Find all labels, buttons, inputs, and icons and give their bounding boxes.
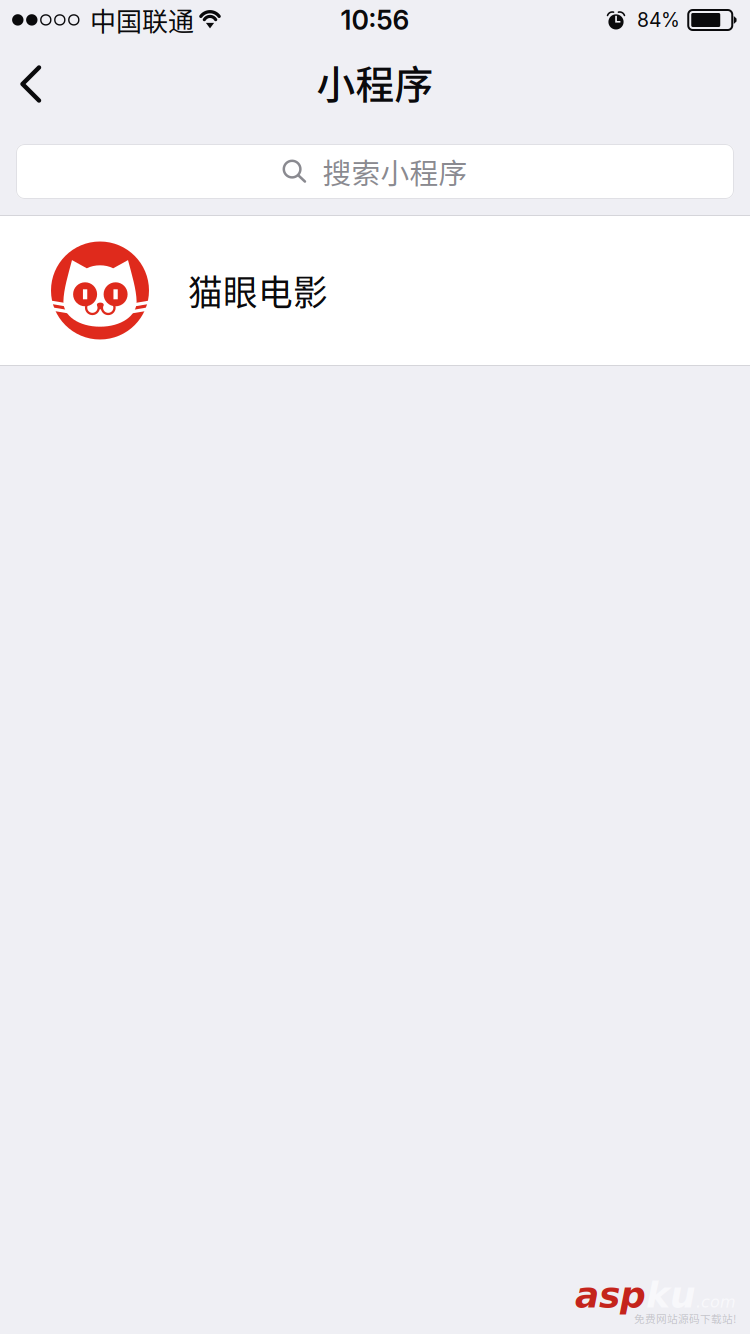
staticText: 猫眼电影 [188, 265, 328, 316]
button[interactable]: 猫眼电影 [0, 216, 750, 365]
staticText: asp [575, 1274, 646, 1316]
button[interactable]: Back [0, 44, 62, 124]
staticText: ku [646, 1274, 696, 1316]
staticText: 小程序 [316, 54, 433, 110]
staticText: 中国联通 [90, 1, 194, 39]
staticText: 免费网站源码下载站! [634, 1311, 736, 1326]
button[interactable]: 搜索小程序 [16, 144, 734, 199]
staticText: 搜索小程序 [322, 151, 467, 192]
staticText: 10:56 [340, 4, 409, 36]
staticText: 84% [637, 8, 680, 32]
